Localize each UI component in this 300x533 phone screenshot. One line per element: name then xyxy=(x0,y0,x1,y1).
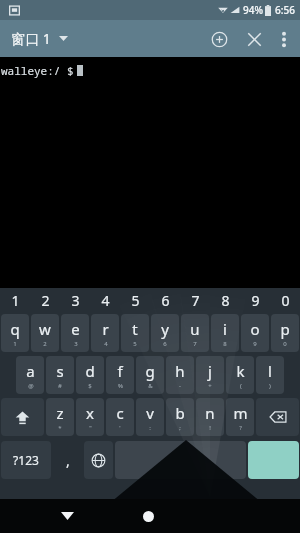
staticText: 0 xyxy=(283,340,287,348)
staticText: $ xyxy=(88,382,92,390)
staticText: k xyxy=(236,361,245,381)
staticText: a xyxy=(26,361,35,381)
staticText: 1 xyxy=(11,291,20,310)
button[interactable]: u xyxy=(181,314,209,352)
staticText: 1 xyxy=(13,340,17,348)
staticText: 7 xyxy=(191,291,200,310)
staticText: r xyxy=(102,319,109,339)
button[interactable]: 3 xyxy=(60,288,90,312)
button[interactable]: r xyxy=(91,314,119,352)
staticText: t xyxy=(132,319,138,339)
staticText: 0 xyxy=(281,291,290,310)
staticText: 6 xyxy=(161,291,170,310)
staticText: 4 xyxy=(101,291,110,310)
staticText: s xyxy=(56,361,64,381)
button[interactable]: o xyxy=(241,314,269,352)
staticText: 5 xyxy=(131,291,140,310)
button[interactable]: c xyxy=(106,398,134,436)
staticText: " xyxy=(89,424,92,432)
button[interactable]: n xyxy=(196,398,224,436)
button[interactable]: j xyxy=(196,356,224,394)
button[interactable]: Home xyxy=(133,501,163,531)
staticText: z xyxy=(56,403,64,423)
button[interactable]: 6 xyxy=(150,288,180,312)
staticText: f xyxy=(117,361,123,381)
button[interactable]: 5 xyxy=(120,288,150,312)
staticText: 2 xyxy=(43,340,47,348)
staticText: 5 xyxy=(133,340,137,348)
button[interactable]: Space xyxy=(115,441,246,479)
button[interactable]: l xyxy=(256,356,284,394)
button[interactable]: q xyxy=(1,314,29,352)
button[interactable]: t xyxy=(121,314,149,352)
button[interactable]: v xyxy=(136,398,164,436)
button[interactable]: 8 xyxy=(210,288,240,312)
staticText: n xyxy=(205,403,215,423)
button[interactable]: i xyxy=(211,314,239,352)
staticText: 6 xyxy=(163,340,167,348)
button[interactable]: h xyxy=(166,356,194,394)
button[interactable]: a xyxy=(16,356,44,394)
staticText: 3 xyxy=(71,291,80,310)
button[interactable]: z xyxy=(46,398,74,436)
button[interactable]: More options xyxy=(271,21,297,57)
button[interactable]: ?123 xyxy=(1,441,51,479)
staticText: m xyxy=(233,403,248,423)
button[interactable]: Hide keyboard xyxy=(52,501,82,531)
button[interactable]: 窗口 1 xyxy=(0,22,80,55)
button[interactable]: Shift xyxy=(1,398,44,436)
staticText: @ xyxy=(28,382,34,390)
button[interactable]: 7 xyxy=(180,288,210,312)
button[interactable]: 4 xyxy=(90,288,120,312)
staticText: walleye:/ $ xyxy=(1,63,74,78)
staticText: + xyxy=(208,382,212,390)
button[interactable]: d xyxy=(76,356,104,394)
staticText: 9 xyxy=(253,340,257,348)
button[interactable]: y xyxy=(151,314,179,352)
button[interactable]: New window xyxy=(201,21,237,57)
staticText: 7 xyxy=(193,340,197,348)
staticText: 窗口 1 xyxy=(11,29,51,48)
staticText: w xyxy=(39,319,51,339)
staticText: 2 xyxy=(41,291,50,310)
button[interactable]: Change language xyxy=(84,441,113,479)
staticText: e xyxy=(71,319,80,339)
staticText: l xyxy=(268,361,272,381)
button[interactable]: w xyxy=(31,314,59,352)
button[interactable]: 1 xyxy=(0,288,30,312)
staticText: i xyxy=(223,319,227,339)
staticText: ?123 xyxy=(13,452,39,468)
button[interactable]: Enter xyxy=(248,441,299,479)
button[interactable]: g xyxy=(136,356,164,394)
staticText: ? xyxy=(239,424,242,432)
button[interactable]: m xyxy=(226,398,254,436)
button[interactable]: s xyxy=(46,356,74,394)
staticText: * xyxy=(58,424,62,432)
button[interactable]: 2 xyxy=(30,288,60,312)
staticText: 94% xyxy=(243,3,263,17)
staticText: 6:56 xyxy=(275,3,295,17)
staticText: 4 xyxy=(104,340,108,348)
button[interactable]: x xyxy=(76,398,104,436)
button[interactable]: 0 xyxy=(270,288,300,312)
staticText: ' xyxy=(119,424,121,432)
staticText: - xyxy=(179,382,181,390)
staticText: 3 xyxy=(74,340,78,348)
button[interactable]: p xyxy=(271,314,299,352)
staticText: g xyxy=(145,361,155,381)
staticText: p xyxy=(280,319,290,339)
button[interactable]: b xyxy=(166,398,194,436)
staticText: ; xyxy=(179,424,181,432)
staticText: : xyxy=(149,424,151,432)
staticText: u xyxy=(190,319,200,339)
button[interactable]: f xyxy=(106,356,134,394)
button[interactable]: k xyxy=(226,356,254,394)
button[interactable]: , xyxy=(53,441,82,479)
staticText: d xyxy=(85,361,95,381)
button[interactable]: Backspace xyxy=(256,398,299,436)
staticText: q xyxy=(10,319,20,339)
button[interactable]: e xyxy=(61,314,89,352)
button[interactable]: Close window xyxy=(237,22,271,56)
button[interactable]: 9 xyxy=(240,288,270,312)
staticText: & xyxy=(148,382,153,390)
